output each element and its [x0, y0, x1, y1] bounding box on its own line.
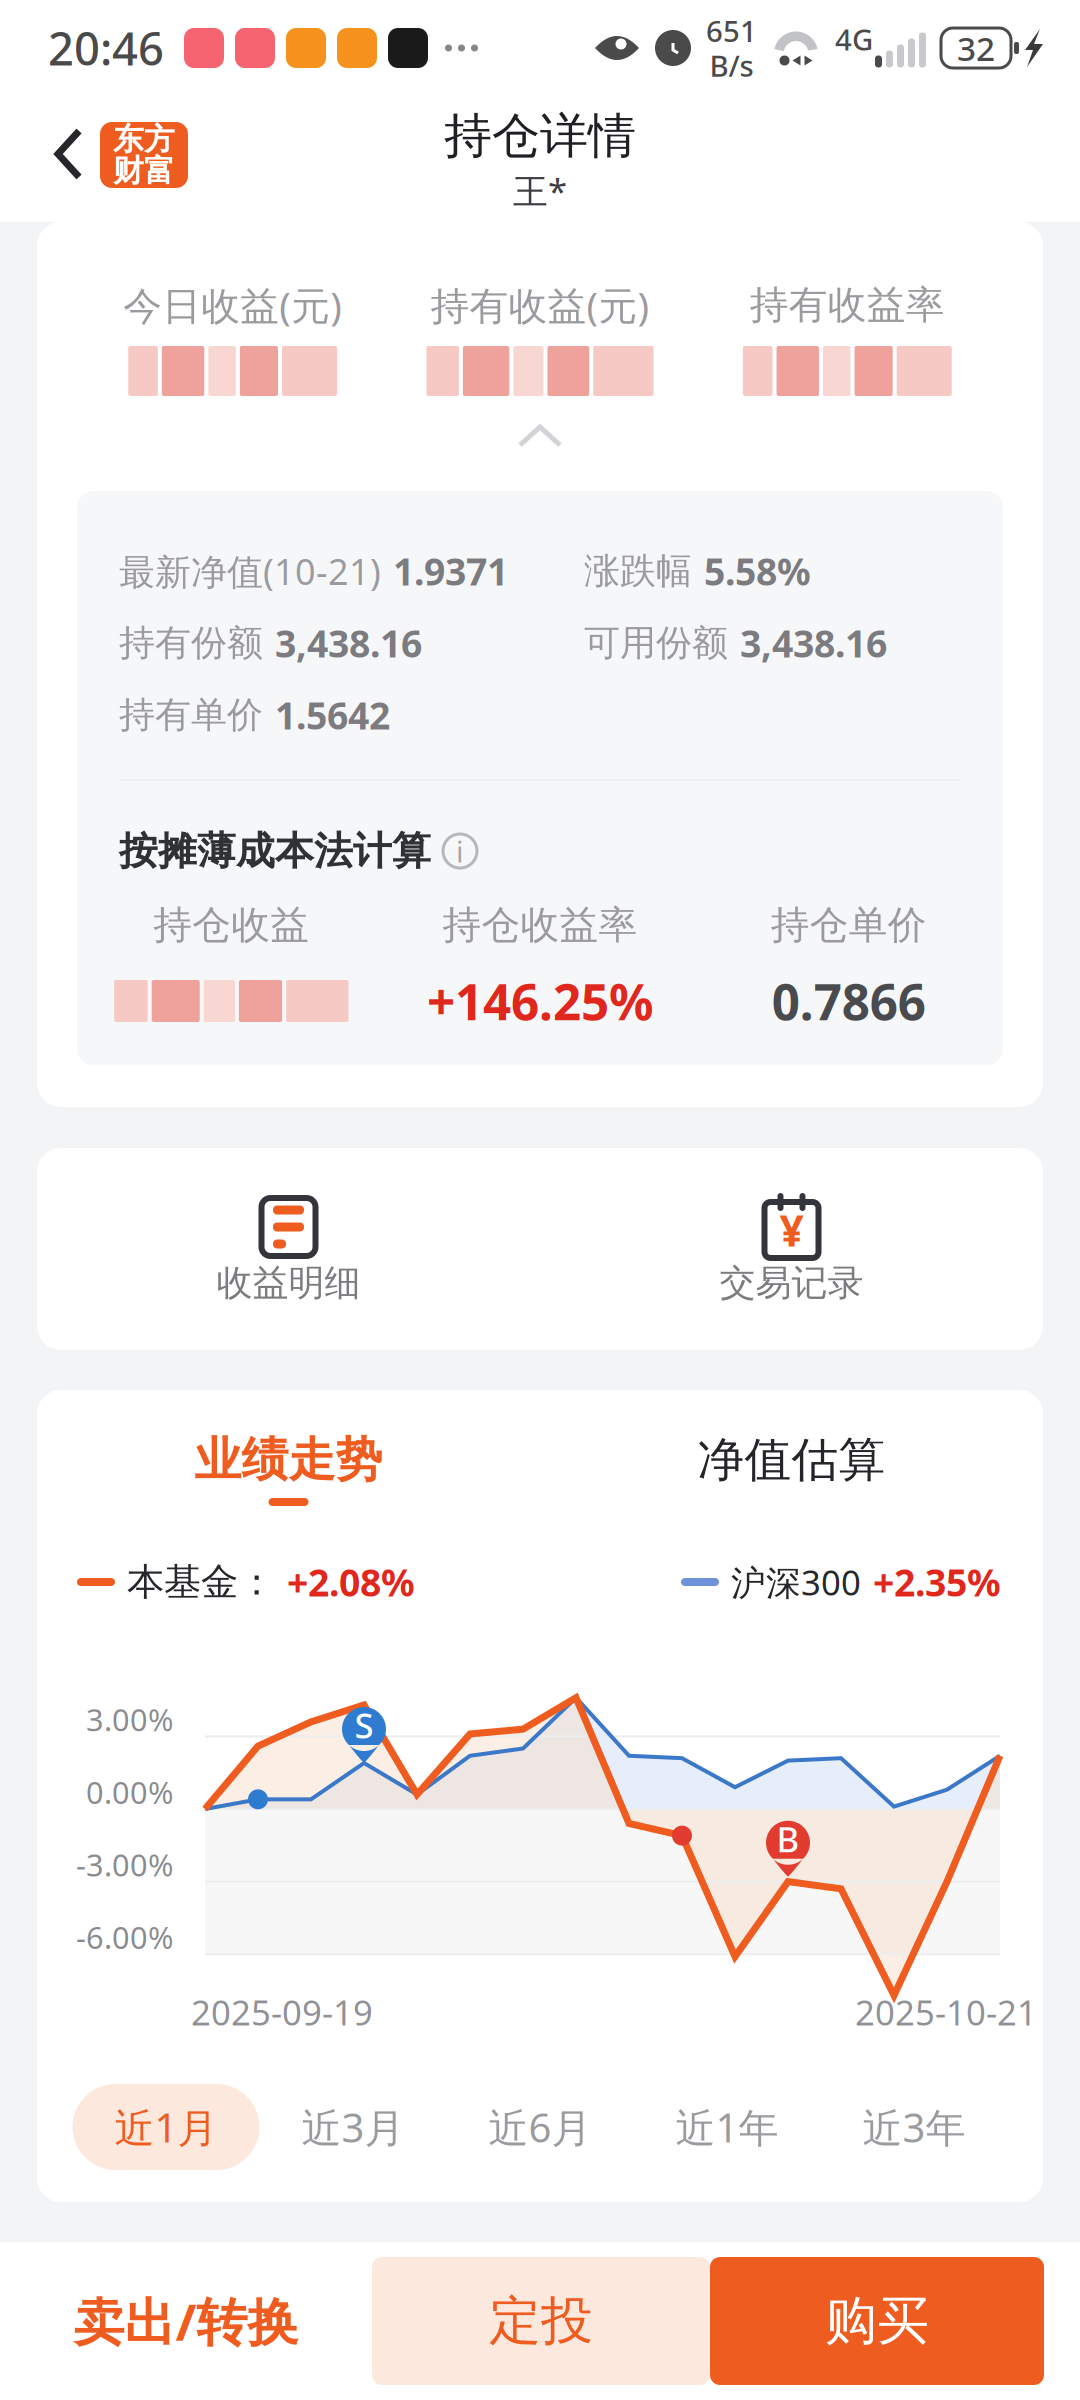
button[interactable]: 近3年: [820, 2084, 1007, 2170]
staticText: 收益明细: [216, 1261, 360, 1305]
staticText: -6.00%: [76, 1917, 173, 1957]
staticText: 持有份额: [119, 621, 263, 665]
staticText: 交易记录: [719, 1261, 863, 1305]
staticText: +2.35%: [873, 1557, 1001, 1607]
staticText: B/s: [709, 46, 753, 85]
staticText: 32: [957, 26, 995, 70]
button[interactable]: 定投: [372, 2257, 710, 2385]
staticText: 2025-10-21: [855, 1989, 1037, 2035]
staticText: 今日收益(元): [123, 279, 342, 331]
staticText: 涨跌幅: [584, 549, 692, 593]
staticText: 持有收益率: [750, 281, 945, 329]
staticText: 1.5642: [275, 690, 390, 740]
staticText: 2025-09-19: [191, 1989, 373, 2035]
staticText: 购买: [825, 2289, 929, 2353]
staticText: 5.58%: [704, 546, 811, 596]
staticText: 近6月: [488, 2100, 591, 2153]
button[interactable]: ¥: [540, 1148, 1043, 1350]
button[interactable]: 近1月: [72, 2084, 259, 2170]
staticText: 持仓收益率: [442, 901, 637, 949]
staticText: 业绩走势: [194, 1431, 382, 1489]
staticText: B: [776, 1816, 799, 1862]
staticText: 持仓详情: [444, 106, 636, 165]
staticText: 0.00%: [86, 1772, 173, 1812]
staticText: 3,438.16: [740, 618, 887, 668]
staticText: 可用份额: [584, 621, 728, 665]
staticText: 3.00%: [86, 1699, 173, 1740]
staticText: 东方: [113, 120, 175, 158]
button[interactable]: 卖出/转换: [0, 2242, 372, 2400]
button[interactable]: 收起: [465, 419, 615, 491]
staticText: -3.00%: [76, 1844, 173, 1885]
staticText: 651: [706, 11, 757, 50]
staticText: 3,438.16: [275, 618, 422, 668]
staticText: 财富: [113, 152, 175, 190]
button[interactable]: 近3月: [259, 2084, 446, 2170]
staticText: 近1年: [675, 2100, 778, 2153]
staticText: 1.9371: [393, 546, 508, 596]
staticText: S: [354, 1702, 373, 1748]
staticText: 定投: [489, 2289, 593, 2353]
button[interactable]: 净值估算: [540, 1432, 1043, 1506]
staticText: 持有单价: [119, 693, 263, 737]
staticText: 本基金：: [127, 1559, 275, 1605]
staticText: 净值估算: [697, 1431, 885, 1489]
staticText: 沪深300: [731, 1559, 861, 1605]
button[interactable]: 东方财富: [100, 122, 188, 188]
staticText: 卖出/转换: [73, 2287, 298, 2355]
staticText: i: [456, 831, 464, 870]
button[interactable]: 返回: [38, 102, 100, 208]
staticText: 持仓收益: [153, 901, 309, 949]
staticText: ¥: [779, 1202, 803, 1258]
staticText: 近1月: [114, 2100, 217, 2153]
staticText: 20:46: [48, 18, 164, 78]
staticText: 0.7866: [772, 968, 926, 1034]
button[interactable]: 近6月: [446, 2084, 633, 2170]
staticText: +146.25%: [427, 968, 653, 1034]
button[interactable]: 业绩走势: [37, 1432, 540, 1506]
staticText: 近3年: [862, 2100, 965, 2153]
button[interactable]: 近1年: [633, 2084, 820, 2170]
button[interactable]: 购买: [710, 2257, 1044, 2385]
staticText: 最新净值(10-21): [119, 547, 381, 595]
button[interactable]: 收益明细: [37, 1148, 540, 1350]
staticText: 按摊薄成本法计算: [119, 827, 431, 875]
staticText: 近3月: [301, 2100, 404, 2153]
staticText: 4G: [835, 19, 873, 58]
staticText: 持仓单价: [771, 901, 927, 949]
staticText: 王*: [513, 167, 567, 213]
staticText: 持有收益(元): [430, 279, 649, 331]
staticText: +2.08%: [287, 1557, 415, 1607]
